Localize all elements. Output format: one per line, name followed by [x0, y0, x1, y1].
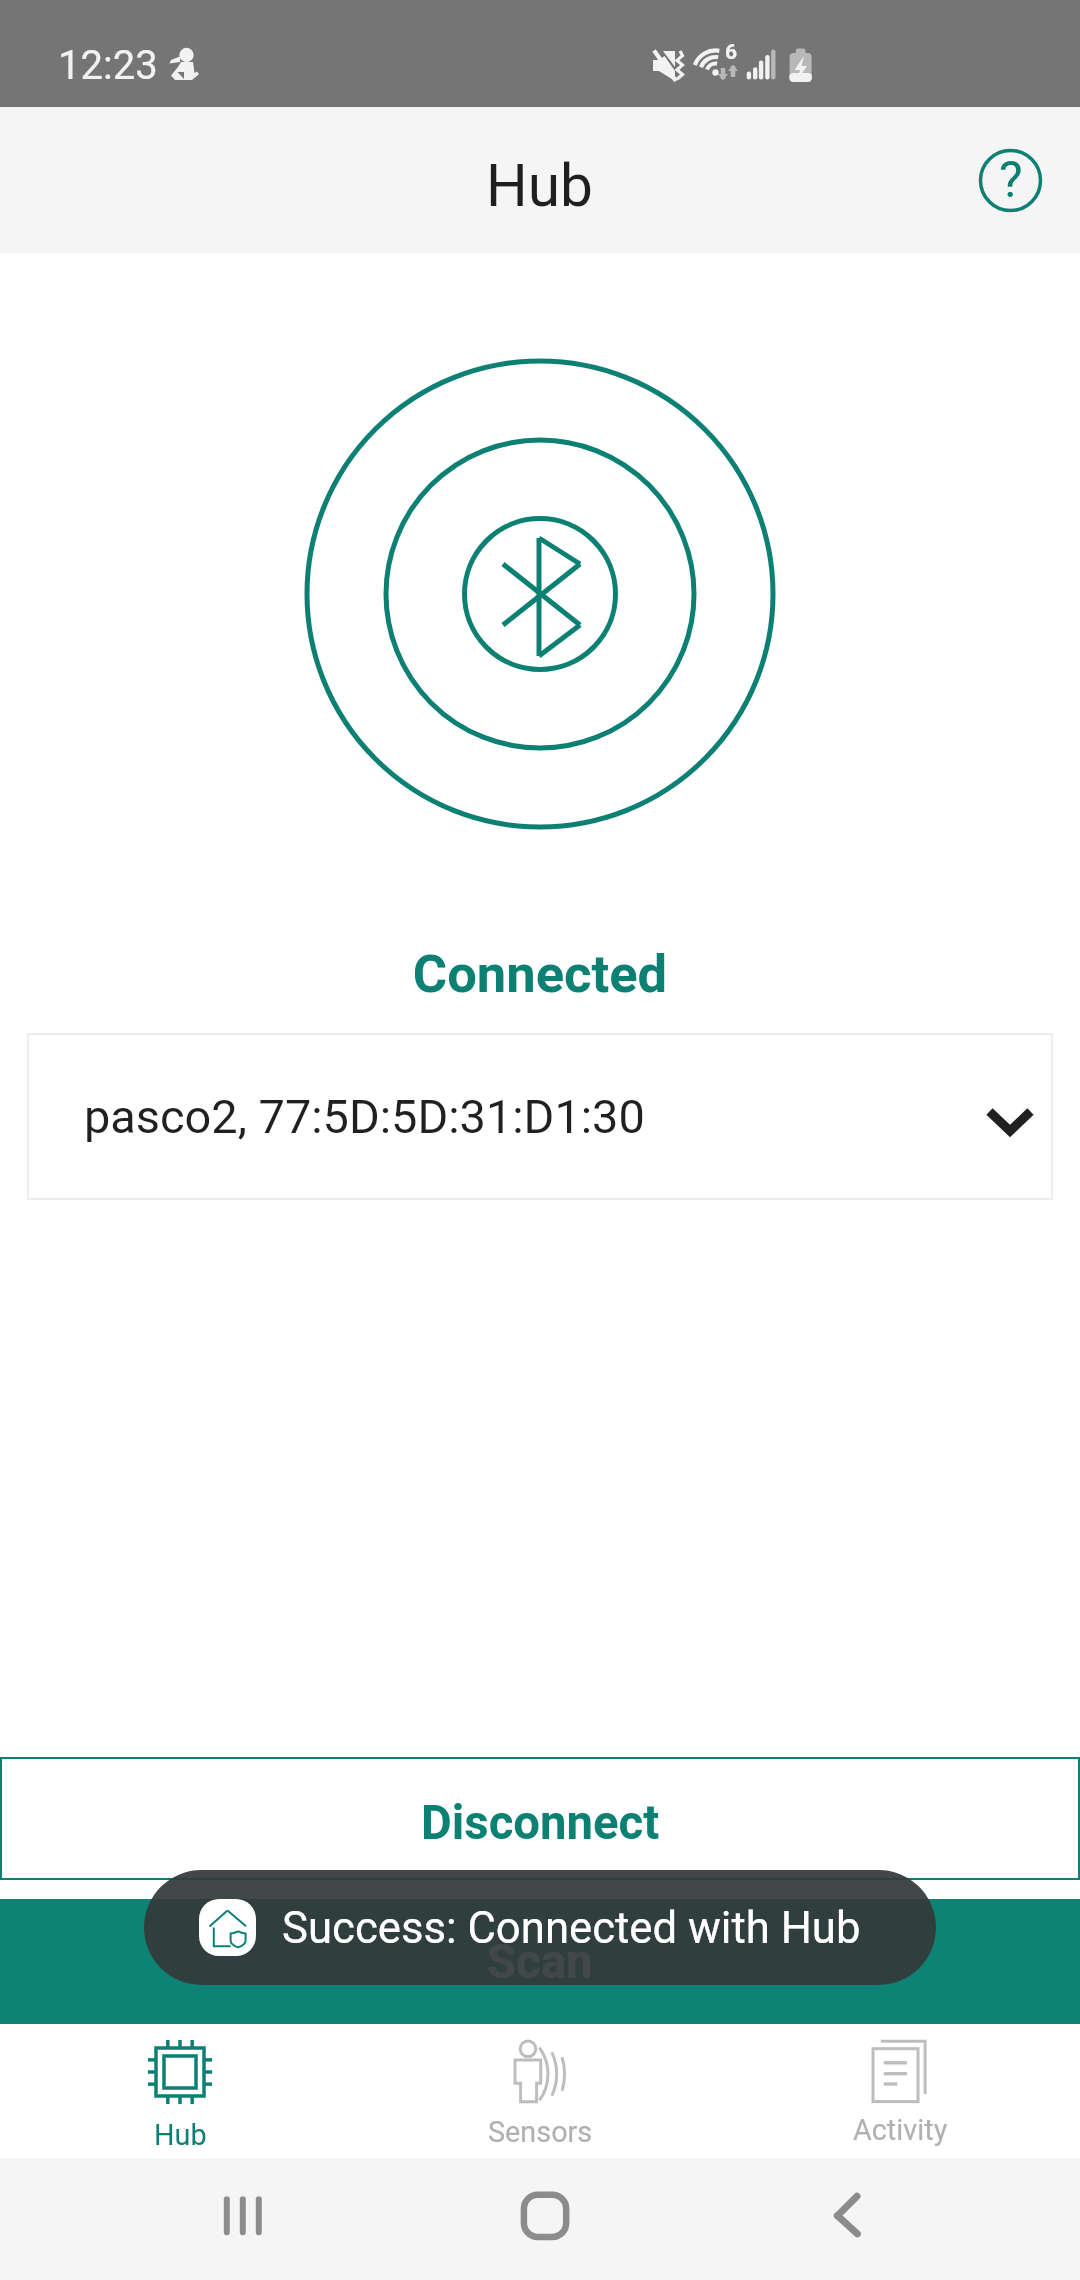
staticText: 6	[725, 40, 738, 65]
staticText: 12:23	[58, 42, 158, 89]
staticText: pasco2, 77:5D:5D:31:D1:30	[84, 1089, 645, 1144]
staticText: Hub	[154, 2118, 207, 2152]
staticText: Success: Connected with Hub	[282, 1902, 861, 1953]
button[interactable]: Sensors	[360, 2024, 720, 2158]
staticText: Disconnect	[421, 1795, 660, 1850]
staticText: Hub	[486, 152, 594, 221]
button[interactable]: pasco2, 77:5D:5D:31:D1:30	[27, 1033, 1053, 1200]
button[interactable]: Scan	[0, 1899, 1080, 2024]
button[interactable]: Activity	[720, 2024, 1080, 2158]
staticText: Connected	[0, 943, 1080, 1005]
staticText: Activity	[853, 2113, 948, 2147]
staticText: Scan	[487, 1934, 593, 1989]
staticText: ?	[999, 151, 1023, 210]
button[interactable]: Hub	[0, 2024, 360, 2158]
staticText: Sensors	[488, 2115, 593, 2149]
button[interactable]: Disconnect	[0, 1757, 1080, 1880]
button[interactable]: Help	[965, 135, 1055, 225]
